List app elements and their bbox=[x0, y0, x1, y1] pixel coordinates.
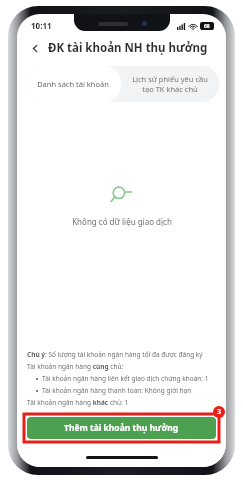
staticText: 3 bbox=[217, 407, 222, 417]
staticText: ĐK tài khoản NH thụ hưởng bbox=[48, 40, 208, 56]
staticText: Thêm tài khoản thụ hưởng bbox=[64, 422, 179, 434]
staticText: Tài khoản ngân hàng khác chủ: 1 bbox=[27, 398, 129, 407]
staticText: Không có dữ liệu giao dịch bbox=[72, 216, 172, 227]
staticText: Lịch sử phiếu yêu cầu tạo TK khác chủ bbox=[132, 74, 208, 94]
staticText: Tài khoản ngân hàng thanh toán: Không gi… bbox=[42, 386, 192, 395]
staticText: 10:11 bbox=[31, 20, 52, 31]
staticText: Tài khoản ngân hàng cùng chủ: bbox=[27, 362, 124, 371]
staticText: Danh sách tài khoản bbox=[37, 79, 109, 89]
button[interactable]: Thêm tài khoản thụ hưởng bbox=[27, 417, 216, 439]
button[interactable]: Danh sách tài khoản bbox=[24, 66, 121, 102]
staticText: 68 bbox=[204, 23, 210, 30]
staticText: Chú ý: Số lượng tài khoản ngân hàng tối … bbox=[27, 350, 203, 359]
staticText: Tài khoản ngân hàng liên kết giao dịch c… bbox=[42, 374, 209, 383]
button[interactable]: Back bbox=[25, 38, 45, 58]
button[interactable]: Lịch sử phiếu yêu cầu tạo TK khác chủ bbox=[121, 66, 219, 102]
